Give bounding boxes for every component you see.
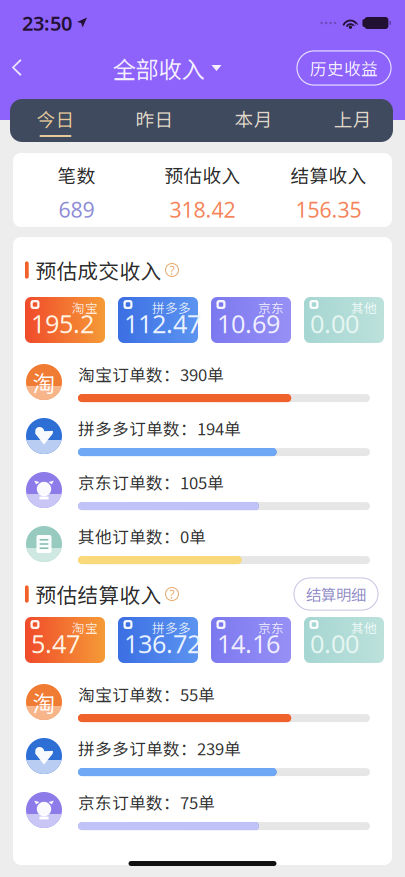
staticText: 5.47 [31,627,80,660]
staticText: 拼多多订单数：194单 [78,416,241,440]
button[interactable]: 结算明细 [294,578,378,610]
button[interactable]: 拼多多订单数：194单 [13,409,392,463]
staticText: 历史收益 [310,56,378,80]
staticText: 预估结算收入 [35,579,161,609]
staticText: 预估收入 [164,161,240,188]
staticText: 318.42 [169,195,235,224]
staticText: 结算收入 [290,161,366,188]
staticText: 全部收入 [112,51,204,85]
staticText: 195.2 [31,307,94,340]
staticText: 昨日 [135,105,173,132]
button[interactable]: 历史收益 [297,51,391,85]
staticText: 淘宝 [72,298,98,317]
staticText: 预估成交收入 [35,255,161,285]
staticText: 拼多多 [152,618,191,637]
staticText: 136.72 [124,627,201,660]
staticText: 淘 [32,366,55,398]
staticText: 本月 [234,105,272,132]
staticText: 京东 [258,618,284,637]
staticText: 拼多多订单数：239单 [78,736,241,760]
button[interactable]: 全部收入 [112,45,221,91]
staticText: 112.47 [124,307,201,340]
staticText: 笔数 [57,161,95,188]
staticText: 14.16 [217,627,280,660]
button[interactable]: 上月 [303,99,402,142]
staticText: 0.00 [310,627,359,660]
staticText: 淘宝 [72,618,98,637]
button[interactable]: 本月 [204,99,303,142]
staticText: 淘宝订单数：390单 [78,362,224,386]
staticText: 689 [58,195,94,224]
button[interactable]: 淘 [13,675,392,729]
staticText: 其他 [351,298,377,317]
staticText: 京东订单数：75单 [78,790,215,814]
staticText: 拼多多 [152,298,191,317]
staticText: 京东订单数：105单 [78,470,224,494]
staticText: 结算明细 [306,583,366,605]
button[interactable]: Back [0,51,37,84]
button[interactable]: 淘 [13,355,392,409]
staticText: 10.69 [217,307,280,340]
staticText: 京东 [258,298,284,317]
staticText: 其他订单数：0单 [78,524,206,548]
staticText: 上月 [333,105,371,132]
button[interactable]: 京东订单数：75单 [13,783,392,837]
staticText: 其他 [351,618,377,637]
button[interactable]: 今日 [6,99,105,142]
staticText: 23:50 [22,10,72,36]
staticText: 0.00 [310,307,359,340]
button[interactable]: 京东订单数：105单 [13,463,392,517]
button[interactable]: 其他订单数：0单 [13,517,392,571]
button[interactable]: 拼多多订单数：239单 [13,729,392,783]
button[interactable]: 昨日 [105,99,204,142]
staticText: 淘宝订单数：55单 [78,682,215,706]
staticText: 淘 [32,686,55,718]
staticText: ? [169,262,174,278]
staticText: 今日 [36,105,74,132]
staticText: 156.35 [295,195,361,224]
staticText: ? [169,586,174,602]
